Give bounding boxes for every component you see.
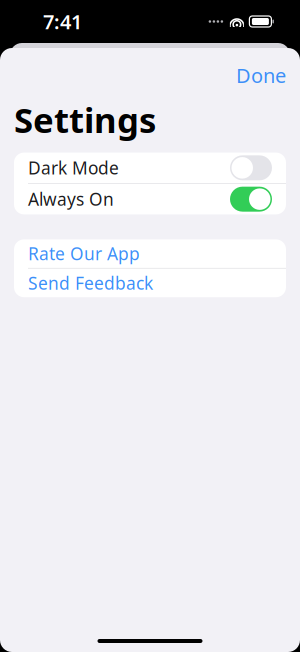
staticText: Done [236, 62, 286, 89]
staticText: Rate Our App [28, 242, 140, 265]
staticText: Dark Mode [28, 156, 119, 179]
button[interactable]: Send Feedback [14, 269, 286, 297]
staticText: Send Feedback [28, 271, 153, 294]
staticText: 7:41 [43, 8, 82, 35]
button[interactable]: Done [230, 56, 292, 95]
button[interactable]: Always On [14, 184, 286, 214]
button[interactable]: Dark Mode [14, 153, 286, 183]
staticText: Settings [14, 97, 156, 143]
staticText: Always On [28, 188, 114, 211]
button[interactable]: Rate Our App [14, 239, 286, 268]
